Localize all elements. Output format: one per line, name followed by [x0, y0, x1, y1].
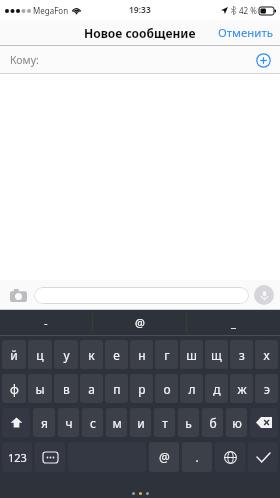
staticText: у — [63, 347, 70, 363]
staticText: з — [239, 347, 245, 363]
staticText: в — [63, 381, 70, 397]
staticText: й — [10, 347, 18, 363]
button[interactable]: х — [255, 340, 278, 369]
button[interactable]: Done — [248, 442, 278, 472]
button[interactable]: @ — [149, 442, 179, 472]
button[interactable]: о — [155, 374, 178, 403]
button[interactable]: у — [54, 340, 78, 369]
staticText: Новое сообщение — [84, 25, 196, 41]
staticText: щ — [211, 347, 222, 363]
staticText: б — [209, 415, 217, 431]
staticText: 19:33 — [129, 4, 151, 16]
button[interactable]: Кому: — [0, 46, 280, 74]
staticText: @ — [135, 315, 145, 330]
staticText: г — [164, 347, 170, 363]
staticText: с — [90, 415, 96, 431]
button[interactable]: й — [2, 340, 26, 369]
button[interactable] — [34, 287, 249, 304]
button[interactable]: в — [54, 374, 78, 403]
button[interactable]: т — [154, 408, 175, 437]
staticText: о — [163, 381, 171, 397]
staticText: Отменить — [218, 25, 274, 41]
staticText: д — [213, 381, 221, 397]
staticText: - — [44, 315, 48, 330]
button[interactable]: ж — [230, 374, 253, 403]
button[interactable]: э — [255, 374, 278, 403]
staticText: х — [263, 347, 270, 363]
button[interactable]: г — [155, 340, 178, 369]
button[interactable]: ь — [178, 408, 199, 437]
button[interactable]: е — [105, 340, 128, 369]
staticText: ы — [35, 381, 45, 397]
button[interactable]: Отменить — [212, 21, 280, 45]
button[interactable]: а — [80, 374, 103, 403]
button[interactable]: - — [0, 310, 92, 335]
button[interactable]: ы — [28, 374, 52, 403]
button[interactable]: Add contact — [256, 53, 271, 68]
button[interactable]: р — [130, 374, 153, 403]
staticText: ь — [185, 415, 192, 431]
button[interactable]: . — [182, 442, 212, 472]
staticText: 42 % — [239, 5, 257, 16]
button[interactable]: к — [80, 340, 103, 369]
staticText: ш — [186, 347, 197, 363]
button[interactable]: ф — [2, 374, 26, 403]
staticText: 123 — [8, 450, 27, 465]
button[interactable]: л — [180, 374, 203, 403]
staticText: MegaFon — [33, 5, 69, 16]
button[interactable]: Change language — [215, 442, 245, 472]
button[interactable]: б — [202, 408, 223, 437]
staticText: э — [264, 381, 270, 397]
staticText: Кому: — [10, 53, 39, 67]
staticText: ч — [65, 415, 73, 431]
staticText: н — [138, 347, 146, 363]
button[interactable]: д — [205, 374, 228, 403]
button[interactable]: и — [130, 408, 151, 437]
button[interactable]: Camera — [6, 283, 30, 307]
button[interactable]: п — [105, 374, 128, 403]
button[interactable]: ц — [28, 340, 52, 369]
staticText: @ — [159, 449, 170, 465]
staticText: р — [138, 381, 146, 397]
staticText: . — [195, 449, 199, 465]
button[interactable]: ю — [226, 408, 247, 437]
button[interactable]: щ — [205, 340, 228, 369]
staticText: ц — [36, 347, 44, 363]
button[interactable]: з — [230, 340, 253, 369]
button[interactable]: _ — [187, 310, 280, 335]
button[interactable]: ч — [58, 408, 79, 437]
button[interactable]: Shift — [2, 408, 30, 437]
staticText: и — [137, 415, 145, 431]
button[interactable]: 123 — [2, 442, 32, 472]
staticText: ф — [10, 381, 19, 397]
button[interactable]: Emoji — [35, 442, 65, 472]
staticText: а — [88, 381, 95, 397]
button[interactable]: м — [106, 408, 127, 437]
button[interactable]: я — [33, 408, 55, 437]
staticText: ж — [237, 381, 247, 397]
staticText: ю — [232, 415, 242, 431]
button[interactable]: н — [130, 340, 153, 369]
staticText: п — [113, 381, 121, 397]
staticText: л — [188, 381, 196, 397]
staticText: е — [113, 347, 120, 363]
button[interactable]: ш — [180, 340, 203, 369]
staticText: м — [112, 415, 122, 431]
staticText: к — [88, 347, 95, 363]
button[interactable]: с — [82, 408, 103, 437]
button[interactable]: Voice message — [254, 285, 274, 305]
staticText: _ — [231, 315, 236, 330]
staticText: т — [162, 415, 168, 431]
staticText: я — [41, 415, 48, 431]
button[interactable]: @ — [93, 310, 186, 335]
button[interactable]: Backspace — [250, 408, 278, 437]
